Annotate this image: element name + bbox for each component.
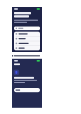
button[interactable]: Search: [14, 26, 40, 30]
button[interactable]: Menu item: [14, 41, 40, 46]
button[interactable]: Continue: [14, 88, 40, 92]
button[interactable]: Menu item: [14, 36, 40, 41]
button[interactable]: Menu item: [14, 46, 40, 50]
button[interactable]: Menu item: [14, 32, 40, 36]
